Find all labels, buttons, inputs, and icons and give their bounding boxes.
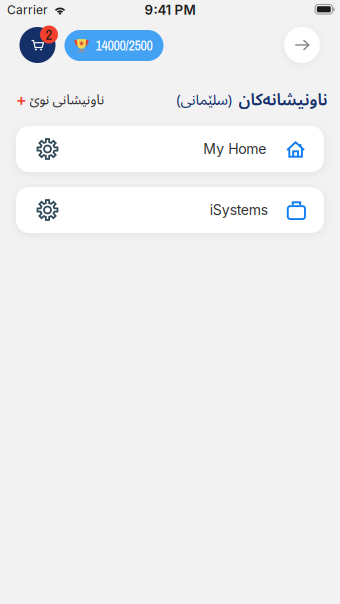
- button[interactable]: My Home: [16, 126, 324, 172]
- button[interactable]: +: [16, 89, 104, 111]
- staticText: 14000/2500: [95, 36, 152, 55]
- button[interactable]: iSystems: [16, 187, 324, 233]
- button[interactable]: Cart: [19, 27, 55, 63]
- button[interactable]: 14000/2500: [64, 30, 163, 61]
- staticText: (سلێمانی): [176, 84, 231, 115]
- staticText: 9:41 PM: [144, 2, 195, 18]
- staticText: ناونیشانەکان: [238, 82, 327, 118]
- button[interactable]: Next: [284, 27, 320, 63]
- staticText: iSystems: [210, 201, 268, 218]
- staticText: 2: [45, 25, 52, 44]
- staticText: +: [16, 90, 27, 110]
- staticText: ناونیشانی نوێ: [29, 86, 104, 114]
- staticText: My Home: [203, 140, 266, 157]
- staticText: Carrier: [7, 3, 48, 17]
